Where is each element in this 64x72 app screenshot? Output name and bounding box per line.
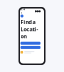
staticText: 9:41: [20, 7, 25, 15]
staticText: ●●●: [34, 9, 40, 12]
staticText: Find a Location: [20, 18, 38, 40]
